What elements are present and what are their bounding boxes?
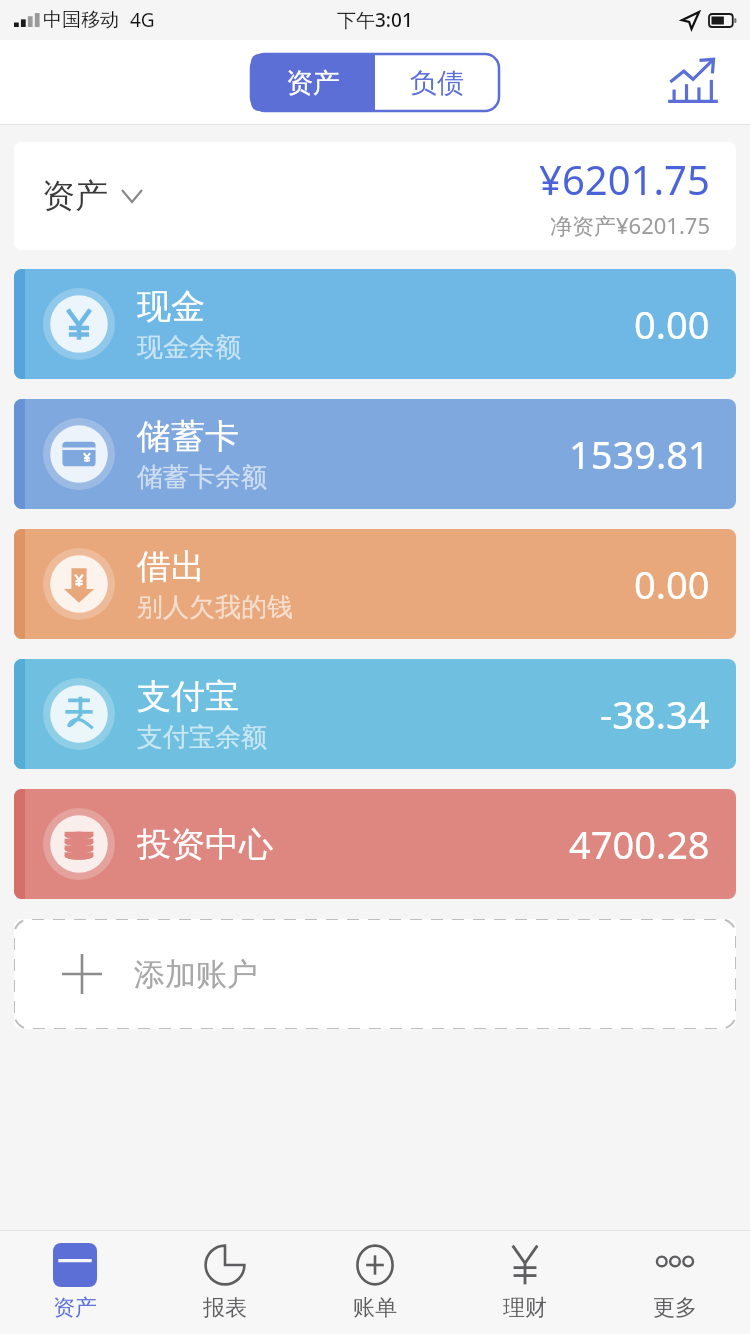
staticText: 4700.28 [569, 818, 710, 870]
staticText: 0.00 [634, 558, 710, 610]
button[interactable]: 支付宝 [14, 659, 736, 769]
staticText: 报表 [203, 1294, 247, 1322]
button[interactable]: 资产 [0, 1231, 150, 1334]
staticText: 下午3:01 [337, 7, 413, 33]
staticText: 支付宝余额 [137, 721, 267, 754]
button[interactable]: 资产 [251, 54, 375, 111]
button[interactable]: 借出 [14, 529, 736, 639]
button[interactable]: 现金 [14, 269, 736, 379]
staticText: 现金 [137, 285, 205, 328]
button[interactable]: Statistics chart [662, 51, 724, 113]
button[interactable]: 添加账户 [14, 919, 736, 1029]
staticText: 负债 [410, 66, 464, 100]
staticText: -38.34 [600, 688, 710, 740]
button[interactable]: 账单 [300, 1231, 450, 1334]
staticText: 储蓄卡余额 [137, 461, 267, 494]
staticText: 投资中心 [137, 823, 273, 866]
staticText: 1539.81 [569, 428, 710, 480]
staticText: 储蓄卡 [137, 415, 239, 458]
staticText: 现金余额 [137, 331, 241, 364]
staticText: 资产 [42, 175, 108, 217]
staticText: 净资产¥6201.75 [550, 210, 710, 240]
staticText: 支付宝 [137, 675, 239, 718]
staticText: 资产 [53, 1294, 97, 1322]
staticText: 账单 [353, 1294, 397, 1322]
staticText: 中国移动 [43, 8, 119, 32]
staticText: 资产 [286, 66, 340, 100]
button[interactable]: 理财 [450, 1231, 600, 1334]
staticText: 添加账户 [134, 955, 258, 994]
button[interactable]: 资产 [14, 142, 736, 250]
staticText: 理财 [503, 1294, 547, 1322]
button[interactable]: 报表 [150, 1231, 300, 1334]
staticText: 4G [130, 7, 155, 33]
button[interactable]: 储蓄卡 [14, 399, 736, 509]
staticText: 借出 [137, 545, 205, 588]
button[interactable]: 负债 [375, 54, 499, 111]
button[interactable]: 投资中心 [14, 789, 736, 899]
staticText: 别人欠我的钱 [137, 591, 293, 624]
button[interactable]: 更多 [600, 1231, 750, 1334]
staticText: 更多 [653, 1294, 697, 1322]
staticText: ¥6201.75 [539, 152, 710, 206]
staticText: 0.00 [634, 298, 710, 350]
